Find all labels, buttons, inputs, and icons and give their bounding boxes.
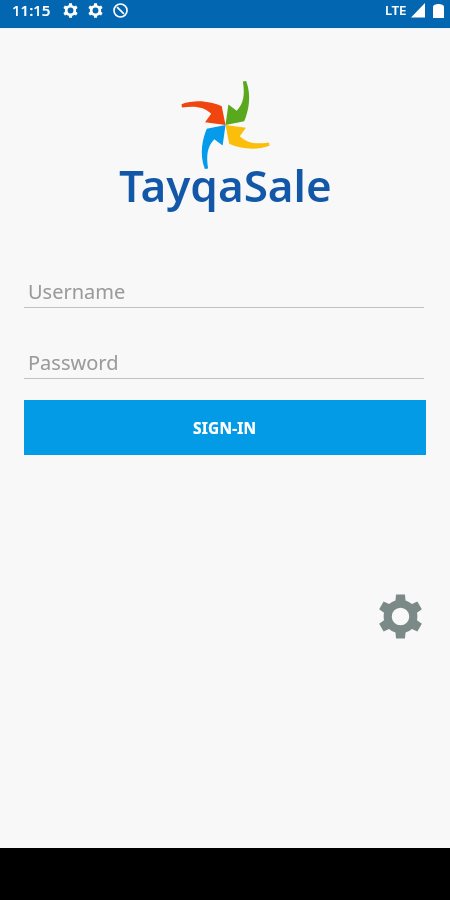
staticText: LTE [385,1,407,19]
staticText: TayqaSale [119,155,332,215]
button[interactable]: Password [24,349,424,379]
button[interactable]: SIGN-IN [24,400,426,455]
staticText: SIGN-IN [193,417,257,438]
staticText: 11:15 [12,0,51,20]
staticText: Username [28,278,126,305]
button[interactable]: Username [24,278,424,308]
staticText: Password [28,349,119,376]
button[interactable]: Settings [374,590,426,642]
